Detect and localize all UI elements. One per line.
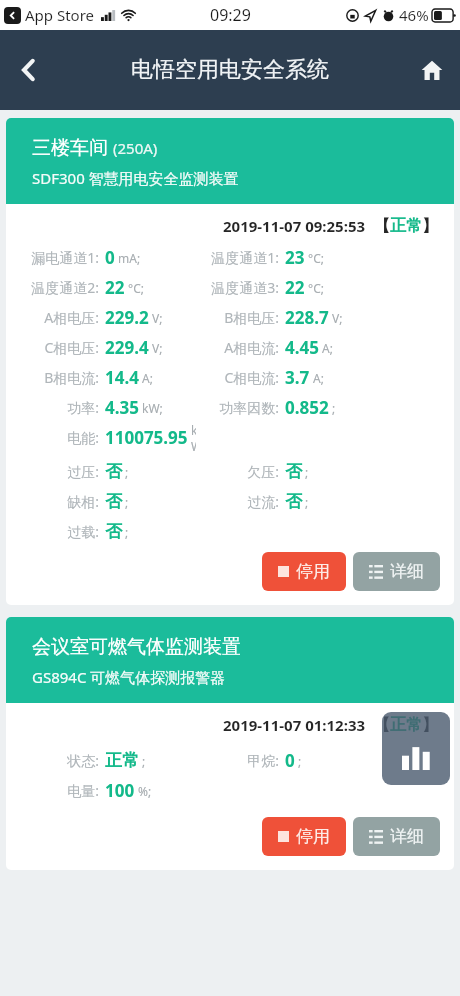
- staticText: 0: [105, 246, 115, 269]
- staticText: 否: [285, 491, 302, 512]
- staticText: A相电压:: [24, 308, 99, 327]
- staticText: 14.4: [105, 366, 139, 389]
- staticText: 电悟空用电安全系统: [131, 56, 329, 84]
- staticText: °C;: [128, 280, 144, 296]
- staticText: 228.7: [285, 306, 329, 329]
- staticText: V;: [152, 310, 163, 326]
- button[interactable]: 停用: [262, 817, 346, 856]
- staticText: A相电流:: [204, 338, 279, 357]
- staticText: 2019-11-07 01:12:33: [223, 715, 366, 735]
- staticText: °C;: [308, 250, 324, 266]
- staticText: SDF300 智慧用电安全监测装置: [32, 168, 239, 188]
- staticText: ;: [142, 753, 146, 769]
- staticText: 4.45: [285, 336, 319, 359]
- staticText: 3.7: [285, 366, 310, 389]
- staticText: 欠压:: [204, 462, 279, 481]
- staticText: 电能:: [24, 428, 99, 447]
- staticText: 温度通道3:: [204, 278, 279, 297]
- staticText: 否: [105, 491, 122, 512]
- staticText: °C;: [308, 280, 324, 296]
- staticText: ;: [125, 524, 129, 540]
- staticText: 否: [105, 461, 122, 482]
- staticText: 正常: [390, 715, 422, 735]
- staticText: 100: [105, 779, 135, 802]
- staticText: B相电压:: [204, 308, 279, 327]
- staticText: ;: [125, 494, 129, 510]
- staticText: 23: [285, 246, 305, 269]
- staticText: kWh;: [191, 422, 196, 452]
- staticText: 09:29: [210, 4, 251, 26]
- staticText: A;: [322, 340, 333, 356]
- staticText: 过压:: [24, 462, 99, 481]
- staticText: 【: [374, 216, 390, 236]
- staticText: ;: [305, 494, 309, 510]
- staticText: 4.35: [105, 396, 139, 419]
- staticText: 正常: [390, 216, 422, 236]
- staticText: V;: [152, 340, 163, 356]
- staticText: 22: [285, 276, 305, 299]
- staticText: 漏电通道1:: [24, 248, 99, 267]
- staticText: 状态:: [24, 751, 99, 770]
- staticText: 】: [422, 216, 438, 236]
- button[interactable]: 三楼车间: [6, 118, 454, 605]
- staticText: 温度通道1:: [204, 248, 279, 267]
- staticText: ;: [125, 464, 129, 480]
- staticText: 停用: [296, 826, 330, 847]
- staticText: V;: [332, 310, 343, 326]
- staticText: 0.852: [285, 396, 329, 419]
- staticText: B相电流:: [24, 368, 99, 387]
- staticText: 过流:: [204, 492, 279, 511]
- staticText: 229.2: [105, 306, 149, 329]
- staticText: 2019-11-07 09:25:53: [223, 216, 366, 236]
- staticText: 229.4: [105, 336, 149, 359]
- button[interactable]: Back: [0, 42, 56, 98]
- button[interactable]: 会议室可燃气体监测装置: [6, 617, 454, 870]
- staticText: 0: [285, 749, 295, 772]
- staticText: 缺相:: [24, 492, 99, 511]
- staticText: 功率:: [24, 398, 99, 417]
- button[interactable]: 详细: [353, 552, 440, 591]
- staticText: 温度通道2:: [24, 278, 99, 297]
- staticText: ;: [298, 753, 302, 769]
- staticText: 46%: [399, 5, 429, 25]
- staticText: GS894C 可燃气体探测报警器: [32, 667, 226, 687]
- staticText: kW;: [142, 400, 163, 416]
- staticText: 会议室可燃气体监测装置: [32, 635, 241, 659]
- staticText: 三楼车间: [32, 136, 108, 160]
- button[interactable]: Home: [404, 42, 460, 98]
- button[interactable]: 详细: [353, 817, 440, 856]
- staticText: C相电压:: [24, 338, 99, 357]
- staticText: 功率因数:: [204, 398, 279, 417]
- staticText: C相电流:: [204, 368, 279, 387]
- staticText: ;: [332, 400, 336, 416]
- staticText: A;: [313, 370, 324, 386]
- staticText: mA;: [118, 250, 141, 266]
- staticText: 】: [422, 715, 438, 735]
- staticText: 正常: [105, 750, 139, 771]
- staticText: 【: [374, 715, 390, 735]
- staticText: 甲烷:: [204, 751, 279, 770]
- staticText: (250A): [113, 138, 158, 158]
- staticText: A;: [142, 370, 153, 386]
- staticText: 详细: [390, 826, 424, 847]
- staticText: 否: [285, 461, 302, 482]
- staticText: 110075.95: [105, 426, 188, 449]
- button[interactable]: Chart: [382, 712, 450, 785]
- staticText: 否: [105, 521, 122, 542]
- staticText: 22: [105, 276, 125, 299]
- staticText: App Store: [25, 5, 95, 25]
- staticText: ;: [305, 464, 309, 480]
- staticText: 详细: [390, 561, 424, 582]
- staticText: %;: [138, 783, 152, 799]
- staticText: 停用: [296, 561, 330, 582]
- staticText: 电量:: [24, 781, 99, 800]
- button[interactable]: 停用: [262, 552, 346, 591]
- staticText: 过载:: [24, 522, 99, 541]
